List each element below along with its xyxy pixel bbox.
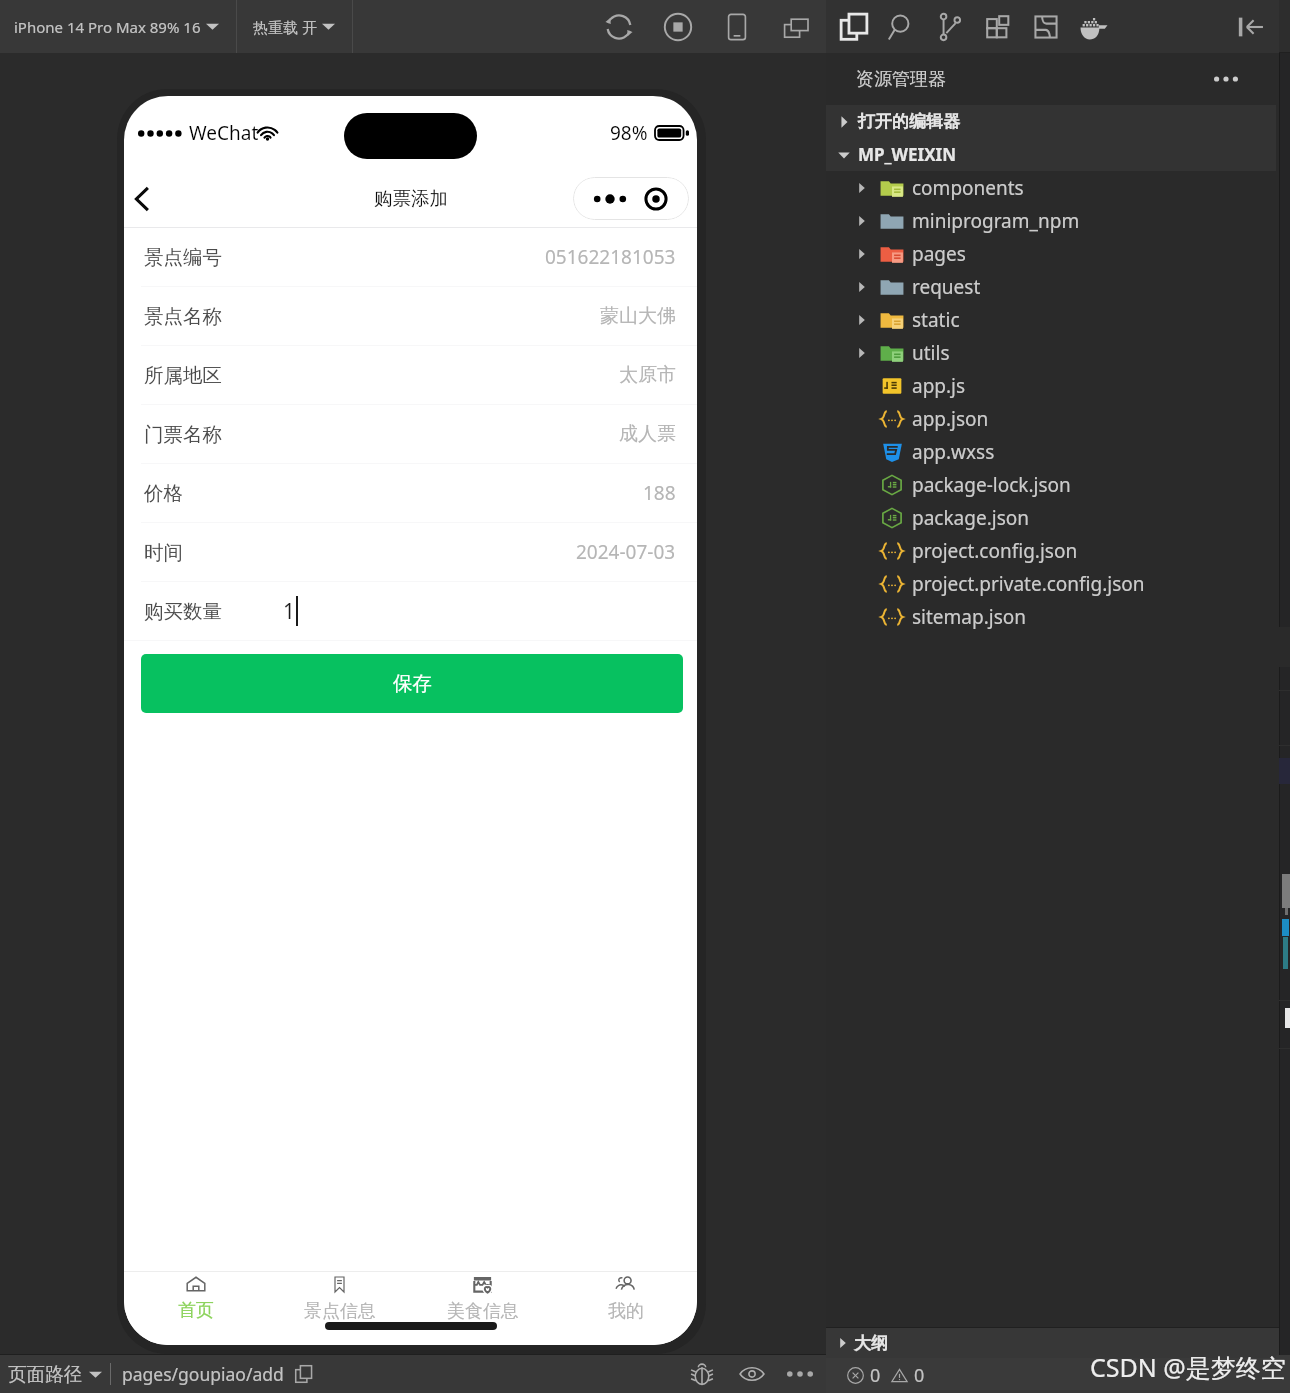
staticText: 购票添加 (374, 187, 448, 210)
button[interactable]: More actions (1211, 64, 1241, 94)
button[interactable]: project.private.config.json (826, 567, 1279, 600)
staticText: 188 (643, 480, 676, 506)
staticText: sitemap.json (912, 604, 1027, 630)
staticText: 保存 (393, 671, 432, 696)
staticText: 所属地区 (144, 363, 222, 388)
staticText: 1 (283, 597, 296, 626)
staticText: 景点名称 (144, 304, 222, 329)
staticText: 0 (914, 1363, 925, 1388)
button[interactable]: Source control (926, 3, 974, 51)
button[interactable]: Stop (652, 1, 704, 53)
button[interactable]: Debug (682, 1355, 722, 1393)
button[interactable]: 首页 (124, 1272, 268, 1323)
button[interactable]: Explorer (830, 3, 878, 51)
button[interactable]: miniprogram_npm (826, 204, 1279, 237)
staticText: 太原市 (619, 363, 676, 387)
button[interactable]: Menu (573, 177, 689, 220)
button[interactable]: request (826, 270, 1279, 303)
button[interactable]: 打开的编辑器 (826, 105, 1276, 138)
button[interactable]: 价格 (124, 464, 697, 522)
button[interactable]: MP_WEIXIN (826, 138, 1276, 171)
button[interactable]: app.json (826, 402, 1279, 435)
button[interactable]: 景点编号 (124, 228, 697, 286)
staticText: app.wxss (912, 439, 995, 465)
staticText: 首页 (178, 1299, 214, 1322)
button[interactable]: 门票名称 (124, 405, 697, 463)
button[interactable]: components (826, 171, 1279, 204)
button[interactable]: Extensions (974, 3, 1022, 51)
button[interactable]: Test explorer (1022, 3, 1070, 51)
button[interactable]: static (826, 303, 1279, 336)
staticText: 成人票 (619, 422, 676, 446)
button[interactable]: Copy path (290, 1360, 318, 1388)
button[interactable]: Preview on device (711, 1, 763, 53)
button[interactable]: Preview (732, 1355, 772, 1393)
staticText: request (912, 274, 981, 300)
button[interactable]: 景点名称 (124, 287, 697, 345)
button[interactable]: app.wxss (826, 435, 1279, 468)
button[interactable]: utils (826, 336, 1279, 369)
button[interactable]: 大纲 (826, 1328, 1279, 1358)
button[interactable]: 所属地区 (124, 346, 697, 404)
staticText: iPhone 14 Pro Max 89% 16 (14, 17, 201, 37)
staticText: CSDN @是梦终空 (1090, 1350, 1286, 1384)
staticText: package.json (912, 505, 1030, 531)
button[interactable]: 我的 (554, 1272, 697, 1323)
button[interactable]: Refresh (593, 1, 645, 53)
button[interactable]: 保存 (141, 654, 683, 713)
staticText: 2024-07-03 (576, 539, 676, 565)
button[interactable]: 购买数量 (124, 582, 697, 640)
staticText: 资源管理器 (856, 68, 946, 91)
staticText: utils (912, 340, 950, 366)
button[interactable]: More (780, 1355, 820, 1393)
button[interactable]: 时间 (124, 523, 697, 581)
button[interactable]: app.js (826, 369, 1279, 402)
button[interactable]: Search (878, 3, 926, 51)
staticText: 0 (870, 1363, 881, 1388)
staticText: MP_WEIXIN (858, 143, 956, 166)
staticText: 美食信息 (447, 1300, 519, 1323)
staticText: components (912, 175, 1024, 201)
staticText: 蒙山大佛 (600, 304, 676, 328)
staticText: 打开的编辑器 (858, 111, 960, 132)
button[interactable]: Collapse panel (1227, 3, 1275, 51)
button[interactable]: pages (826, 237, 1279, 270)
button[interactable]: 页面路径 (0, 1355, 110, 1393)
staticText: app.js (912, 373, 966, 399)
staticText: 热重载 开 (253, 17, 317, 37)
button[interactable]: project.config.json (826, 534, 1279, 567)
staticText: pages/goupiao/add (122, 1362, 284, 1386)
staticText: 页面路径 (8, 1363, 82, 1386)
staticText: 价格 (144, 481, 183, 506)
staticText: 大纲 (854, 1333, 888, 1354)
staticText: miniprogram_npm (912, 208, 1080, 234)
button[interactable]: sitemap.json (826, 600, 1279, 633)
staticText: 景点信息 (304, 1300, 376, 1323)
button[interactable]: Docker (1070, 3, 1118, 51)
button[interactable]: 热重载 开 (237, 0, 352, 53)
staticText: 购买数量 (144, 599, 222, 624)
staticText: package-lock.json (912, 472, 1071, 498)
staticText: project.config.json (912, 538, 1078, 564)
staticText: 门票名称 (144, 422, 222, 447)
staticText: 时间 (144, 540, 183, 565)
button[interactable]: Multi window (770, 1, 822, 53)
button[interactable]: Back (124, 171, 170, 227)
button[interactable]: iPhone 14 Pro Max 89% 16 (0, 0, 236, 53)
staticText: 051622181053 (545, 244, 676, 270)
button[interactable]: package-lock.json (826, 468, 1279, 501)
staticText: app.json (912, 406, 989, 432)
staticText: WeChat (189, 120, 259, 146)
staticText: pages (912, 241, 966, 267)
staticText: 景点编号 (144, 245, 222, 270)
button[interactable]: package.json (826, 501, 1279, 534)
staticText: static (912, 307, 960, 333)
staticText: 我的 (608, 1300, 644, 1323)
button[interactable]: 美食信息 (411, 1272, 554, 1323)
staticText: project.private.config.json (912, 571, 1145, 597)
button[interactable]: 景点信息 (268, 1272, 411, 1323)
staticText: 98% (610, 120, 648, 146)
